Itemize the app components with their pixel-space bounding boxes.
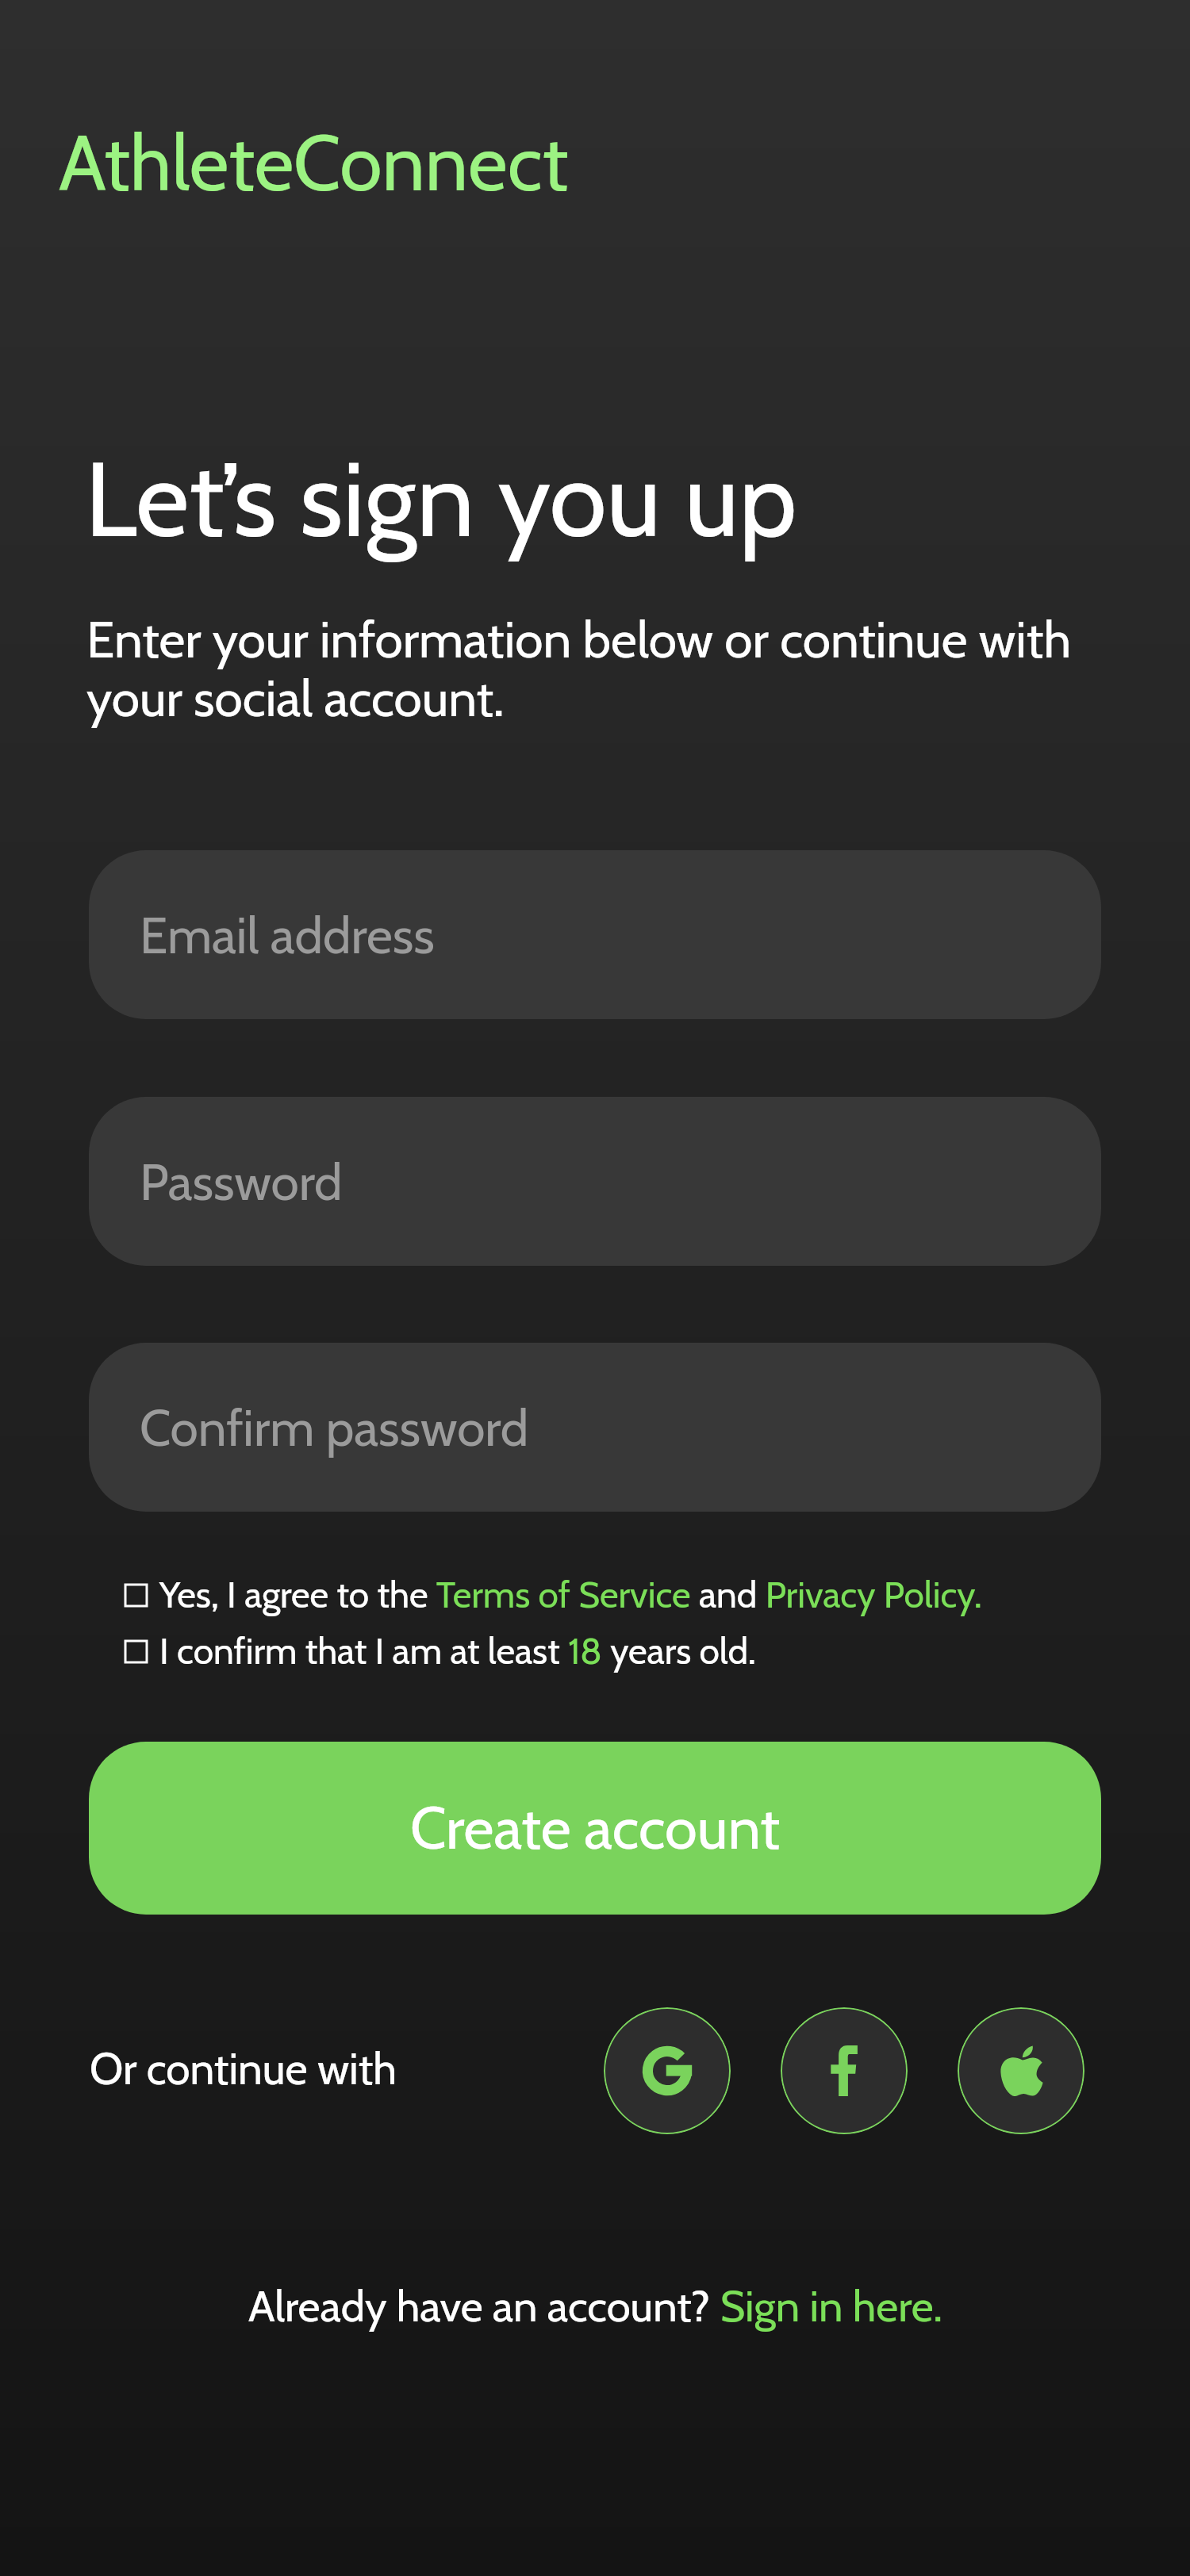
button[interactable]: Already have an account? Sign in here. (248, 2279, 942, 2332)
button[interactable]: Email address (89, 850, 1101, 1019)
button[interactable]: I confirm that I am at least 18 years ol… (125, 1627, 1061, 1676)
staticText: AthleteConnect (59, 116, 569, 209)
staticText: Enter your information below or continue… (86, 608, 1094, 729)
button[interactable]: Sign up with Google (604, 2007, 731, 2134)
staticText: Password (140, 1151, 343, 1213)
button[interactable]: Yes, I agree to the Terms of Service and… (125, 1570, 1061, 1620)
staticText: Confirm password (140, 1397, 529, 1459)
button[interactable]: Sign up with Facebook (781, 2007, 908, 2134)
button[interactable]: Create account (89, 1742, 1101, 1915)
staticText: Create account (410, 1792, 781, 1864)
staticText: Yes, I agree to the Terms of Service and… (159, 1573, 982, 1617)
button[interactable]: Password (89, 1097, 1101, 1266)
staticText: Let’s sign you up (85, 436, 797, 562)
button[interactable]: Confirm password (89, 1343, 1101, 1512)
button[interactable]: Sign up with Apple (958, 2007, 1084, 2134)
staticText: Email address (140, 904, 435, 966)
staticText: I confirm that I am at least 18 years ol… (159, 1629, 756, 1673)
staticText: Or continue with (90, 2042, 397, 2095)
